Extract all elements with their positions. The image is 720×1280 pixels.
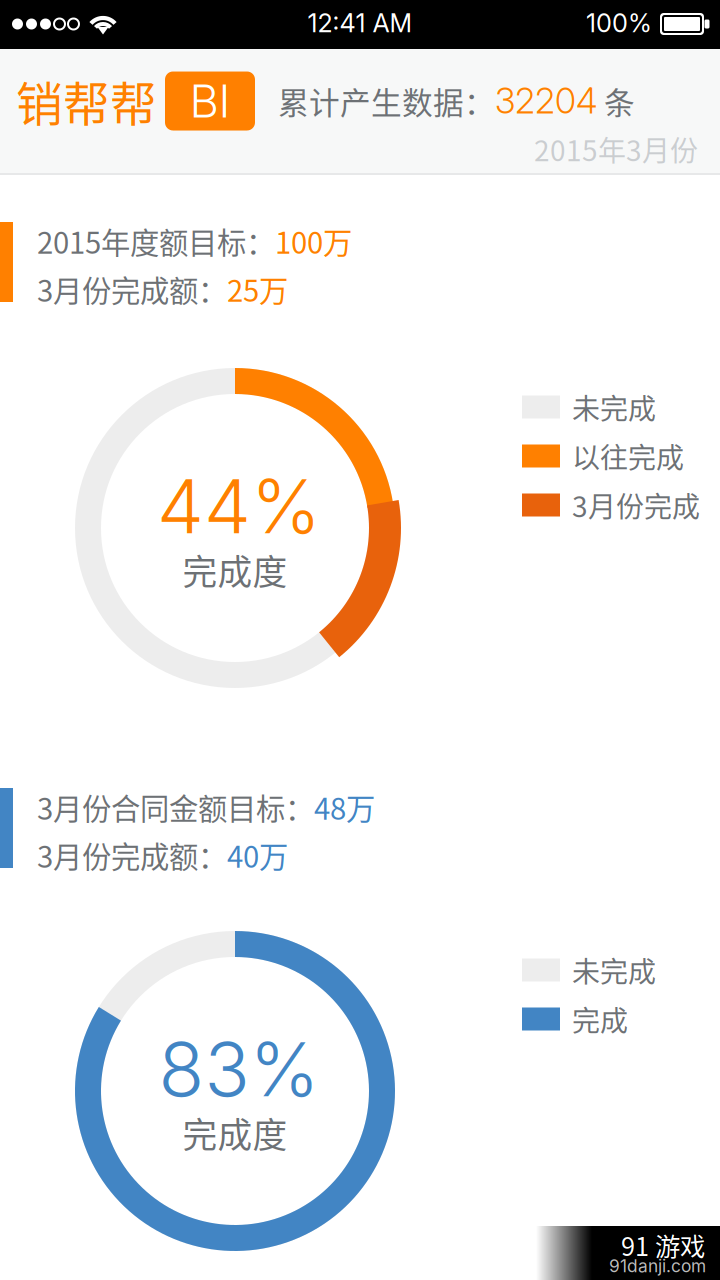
staticText: 3月份完成额：	[37, 268, 227, 310]
staticText: 91 游戏	[621, 1227, 705, 1263]
staticText: 12:41 AM	[307, 8, 412, 38]
staticText: 2015年3月份	[534, 129, 698, 169]
staticText: 48万	[314, 786, 375, 828]
staticText: 未完成	[572, 387, 656, 427]
staticText: 40万	[227, 834, 288, 876]
staticText: 累计产生数据：	[278, 79, 495, 123]
staticText: 销帮帮	[16, 67, 157, 135]
staticText: 以往完成	[572, 436, 684, 476]
staticText: 83%	[158, 1024, 319, 1114]
staticText: 100%	[586, 8, 652, 38]
staticText: 3月份完成额：	[37, 834, 227, 876]
staticText: 完成	[572, 999, 628, 1039]
staticText: 32204	[495, 80, 597, 122]
staticText: 25万	[227, 268, 288, 310]
staticText: 2015年度额目标：	[37, 220, 275, 262]
staticText: 条	[597, 79, 635, 123]
staticText: 44%	[157, 461, 321, 551]
staticText: 100万	[275, 220, 352, 262]
button[interactable]: 销帮帮 BI	[14, 66, 262, 136]
staticText: 完成度	[182, 545, 287, 595]
staticText: BI	[189, 74, 230, 128]
staticText: 91danji.com	[609, 1255, 706, 1276]
button[interactable]: 2015年度额目标：100万，3月份完成额：25万，完成度 44%	[0, 222, 720, 762]
staticText: 未完成	[572, 950, 656, 990]
staticText: 3月份完成	[572, 485, 700, 525]
staticText: 3月份合同金额目标：	[37, 786, 314, 828]
staticText: 完成度	[182, 1108, 287, 1158]
button[interactable]: 3月份合同金额目标：48万，3月份完成额：40万，完成度 83%	[0, 788, 720, 1280]
